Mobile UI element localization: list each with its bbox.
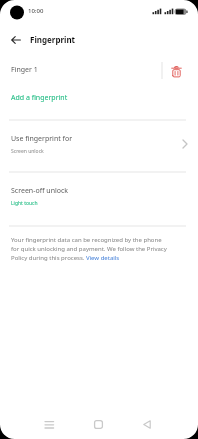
staticText: Light touch	[11, 200, 38, 207]
staticText: Fingerprint	[30, 34, 76, 45]
button[interactable]: Add a fingerprint	[0, 85, 198, 112]
staticText: Add a fingerprint	[11, 93, 68, 103]
button[interactable]	[6, 31, 26, 49]
button[interactable]: Use fingerprint for	[0, 128, 198, 164]
button[interactable]	[29, 410, 69, 439]
staticText: Finger 1	[11, 65, 38, 75]
staticText: 10:00	[28, 7, 44, 15]
button[interactable]: Screen-off unlock	[0, 180, 198, 214]
staticText: Screen-off unlock	[11, 186, 69, 196]
staticText: Screen unlock	[11, 148, 44, 155]
staticText: for quick unlocking and payment. We foll…	[11, 245, 167, 253]
button[interactable]: Finger 1	[0, 56, 198, 85]
staticText: Your fingerprint data can be recognized …	[11, 236, 162, 244]
button[interactable]: Policy during this process. View details	[11, 254, 120, 262]
button[interactable]	[78, 410, 118, 439]
staticText: Use fingerprint for	[11, 134, 73, 144]
button[interactable]	[127, 410, 167, 439]
